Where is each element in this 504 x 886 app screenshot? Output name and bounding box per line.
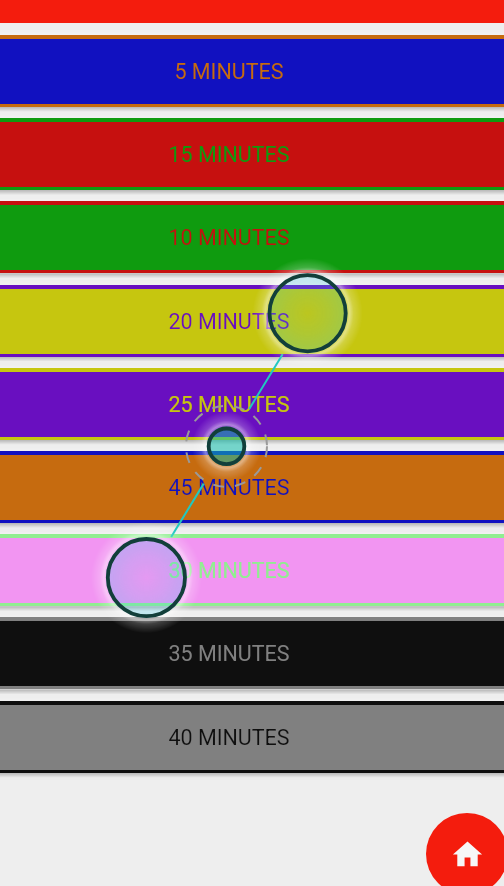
staticText: 25 MINUTES	[168, 392, 290, 417]
staticText: 30 MINUTES	[168, 558, 290, 583]
button[interactable]: 20 MINUTES	[0, 285, 504, 357]
button[interactable]: 30 MINUTES	[0, 534, 504, 606]
button[interactable]: Home	[426, 813, 504, 886]
staticText: 15 MINUTES	[168, 142, 290, 167]
button[interactable]: 5 MINUTES	[0, 35, 504, 107]
staticText: 10 MINUTES	[168, 225, 290, 250]
button[interactable]: 15 MINUTES	[0, 118, 504, 190]
staticText: 5 MINUTES	[174, 59, 284, 84]
button[interactable]: 35 MINUTES	[0, 617, 504, 689]
button[interactable]: 25 MINUTES	[0, 368, 504, 440]
button[interactable]: 10 MINUTES	[0, 201, 504, 273]
button[interactable]: 45 MINUTES	[0, 451, 504, 523]
staticText: 45 MINUTES	[168, 475, 290, 500]
staticText: 35 MINUTES	[168, 641, 290, 666]
button[interactable]: 40 MINUTES	[0, 701, 504, 773]
staticText: 40 MINUTES	[168, 725, 290, 750]
staticText: 20 MINUTES	[168, 309, 290, 334]
